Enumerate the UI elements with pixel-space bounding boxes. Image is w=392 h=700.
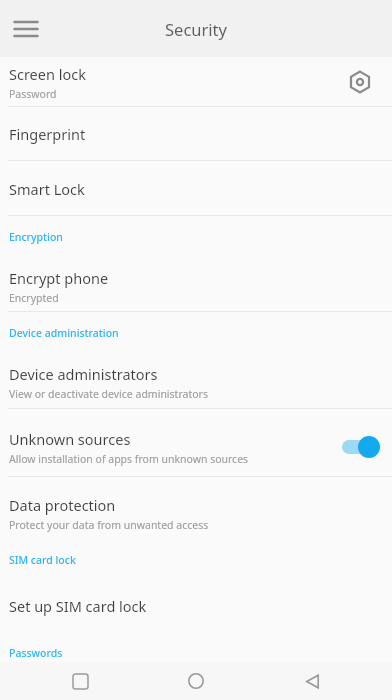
button[interactable]: Screen lock settings bbox=[340, 62, 380, 102]
staticText: Encrypted bbox=[9, 291, 59, 305]
button[interactable]: Menu bbox=[4, 5, 48, 53]
staticText: Allow installation of apps from unknown … bbox=[9, 452, 249, 466]
button[interactable]: Set up SIM card lock bbox=[0, 586, 392, 626]
staticText: Security bbox=[165, 18, 227, 40]
staticText: Fingerprint bbox=[9, 124, 86, 144]
staticText: Screen lock bbox=[9, 64, 86, 84]
staticText: Protect your data from unwanted access bbox=[9, 518, 209, 532]
button[interactable]: Smart Lock bbox=[0, 165, 392, 213]
staticText: View or deactivate device administrators bbox=[9, 387, 208, 401]
staticText: Unknown sources bbox=[9, 429, 131, 449]
button[interactable]: Recents bbox=[58, 662, 102, 700]
staticText: Smart Lock bbox=[9, 179, 85, 199]
staticText: Data protection bbox=[9, 495, 116, 515]
button[interactable]: Fingerprint bbox=[0, 110, 392, 158]
staticText: Encrypt phone bbox=[9, 268, 109, 288]
button[interactable]: Data protection bbox=[0, 490, 392, 536]
button[interactable]: Device administrators bbox=[0, 359, 392, 405]
staticText: Device administration bbox=[9, 326, 119, 340]
staticText: Encryption bbox=[9, 230, 63, 244]
button[interactable]: Encrypt phone bbox=[0, 263, 392, 309]
staticText: Password bbox=[9, 87, 57, 101]
staticText: Passwords bbox=[9, 646, 63, 660]
button[interactable]: Home bbox=[174, 662, 218, 700]
button[interactable]: Screen lock bbox=[0, 58, 392, 106]
staticText: SIM card lock bbox=[9, 553, 76, 567]
staticText: Set up SIM card lock bbox=[9, 596, 147, 616]
staticText: Device administrators bbox=[9, 364, 158, 384]
button[interactable]: Unknown sources bbox=[0, 424, 392, 470]
button[interactable]: Back bbox=[290, 662, 334, 700]
